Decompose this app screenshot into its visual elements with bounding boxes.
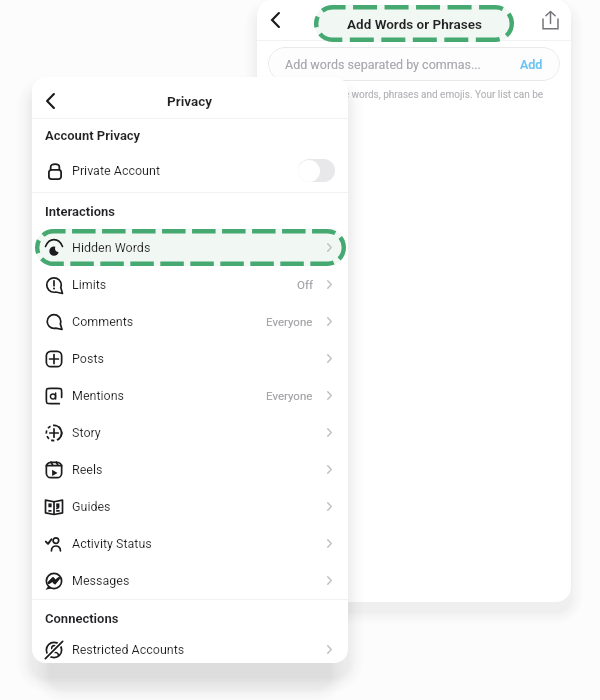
staticText: Connections	[45, 611, 119, 626]
staticText: Guides	[72, 499, 111, 514]
button[interactable]: Add words separated by commas...	[268, 47, 560, 81]
button[interactable]: Back	[260, 5, 290, 35]
staticText: Activity Status	[72, 536, 152, 551]
staticText: Private Account	[72, 163, 160, 178]
staticText: Story	[72, 425, 101, 440]
button[interactable]: Reels	[32, 451, 348, 488]
button[interactable]: Add Words or Phrases	[314, 5, 514, 42]
button[interactable]: Restricted Accounts	[32, 636, 348, 663]
button[interactable]: Activity Status	[32, 525, 348, 562]
staticText: Add words separated by commas...	[285, 57, 481, 72]
staticText: Mentions	[72, 388, 125, 403]
staticText: Hidden Words	[72, 240, 151, 255]
button[interactable]: Comments	[32, 303, 348, 340]
button[interactable]: Share	[535, 5, 565, 35]
button[interactable]: Private Account toggle	[298, 159, 335, 182]
button[interactable]: Story	[32, 414, 348, 451]
staticText: Everyone	[266, 389, 313, 402]
staticText: Hide any multiple words, phrases and emo…	[272, 89, 571, 117]
button[interactable]: Messages	[32, 562, 348, 599]
staticText: Privacy	[167, 93, 213, 109]
staticText: Restricted Accounts	[72, 642, 185, 657]
button[interactable]: Private Account	[32, 152, 348, 189]
button[interactable]: Hidden Words	[32, 229, 348, 266]
staticText: Interactions	[45, 204, 115, 219]
staticText: Messages	[72, 573, 130, 588]
staticText: Add Words or Phrases	[347, 16, 482, 32]
staticText: Account Privacy	[45, 128, 141, 143]
staticText: Limits	[72, 277, 107, 292]
button[interactable]: Guides	[32, 488, 348, 525]
staticText: Reels	[72, 462, 103, 477]
staticText: Posts	[72, 351, 104, 366]
staticText: Off	[297, 278, 313, 291]
staticText: Everyone	[266, 315, 313, 328]
staticText: Comments	[72, 314, 134, 329]
button[interactable]: Mentions	[32, 377, 348, 414]
button[interactable]: Back	[35, 86, 65, 116]
button[interactable]: Limits	[32, 266, 348, 303]
button[interactable]: Posts	[32, 340, 348, 377]
staticText: Add	[520, 57, 543, 72]
